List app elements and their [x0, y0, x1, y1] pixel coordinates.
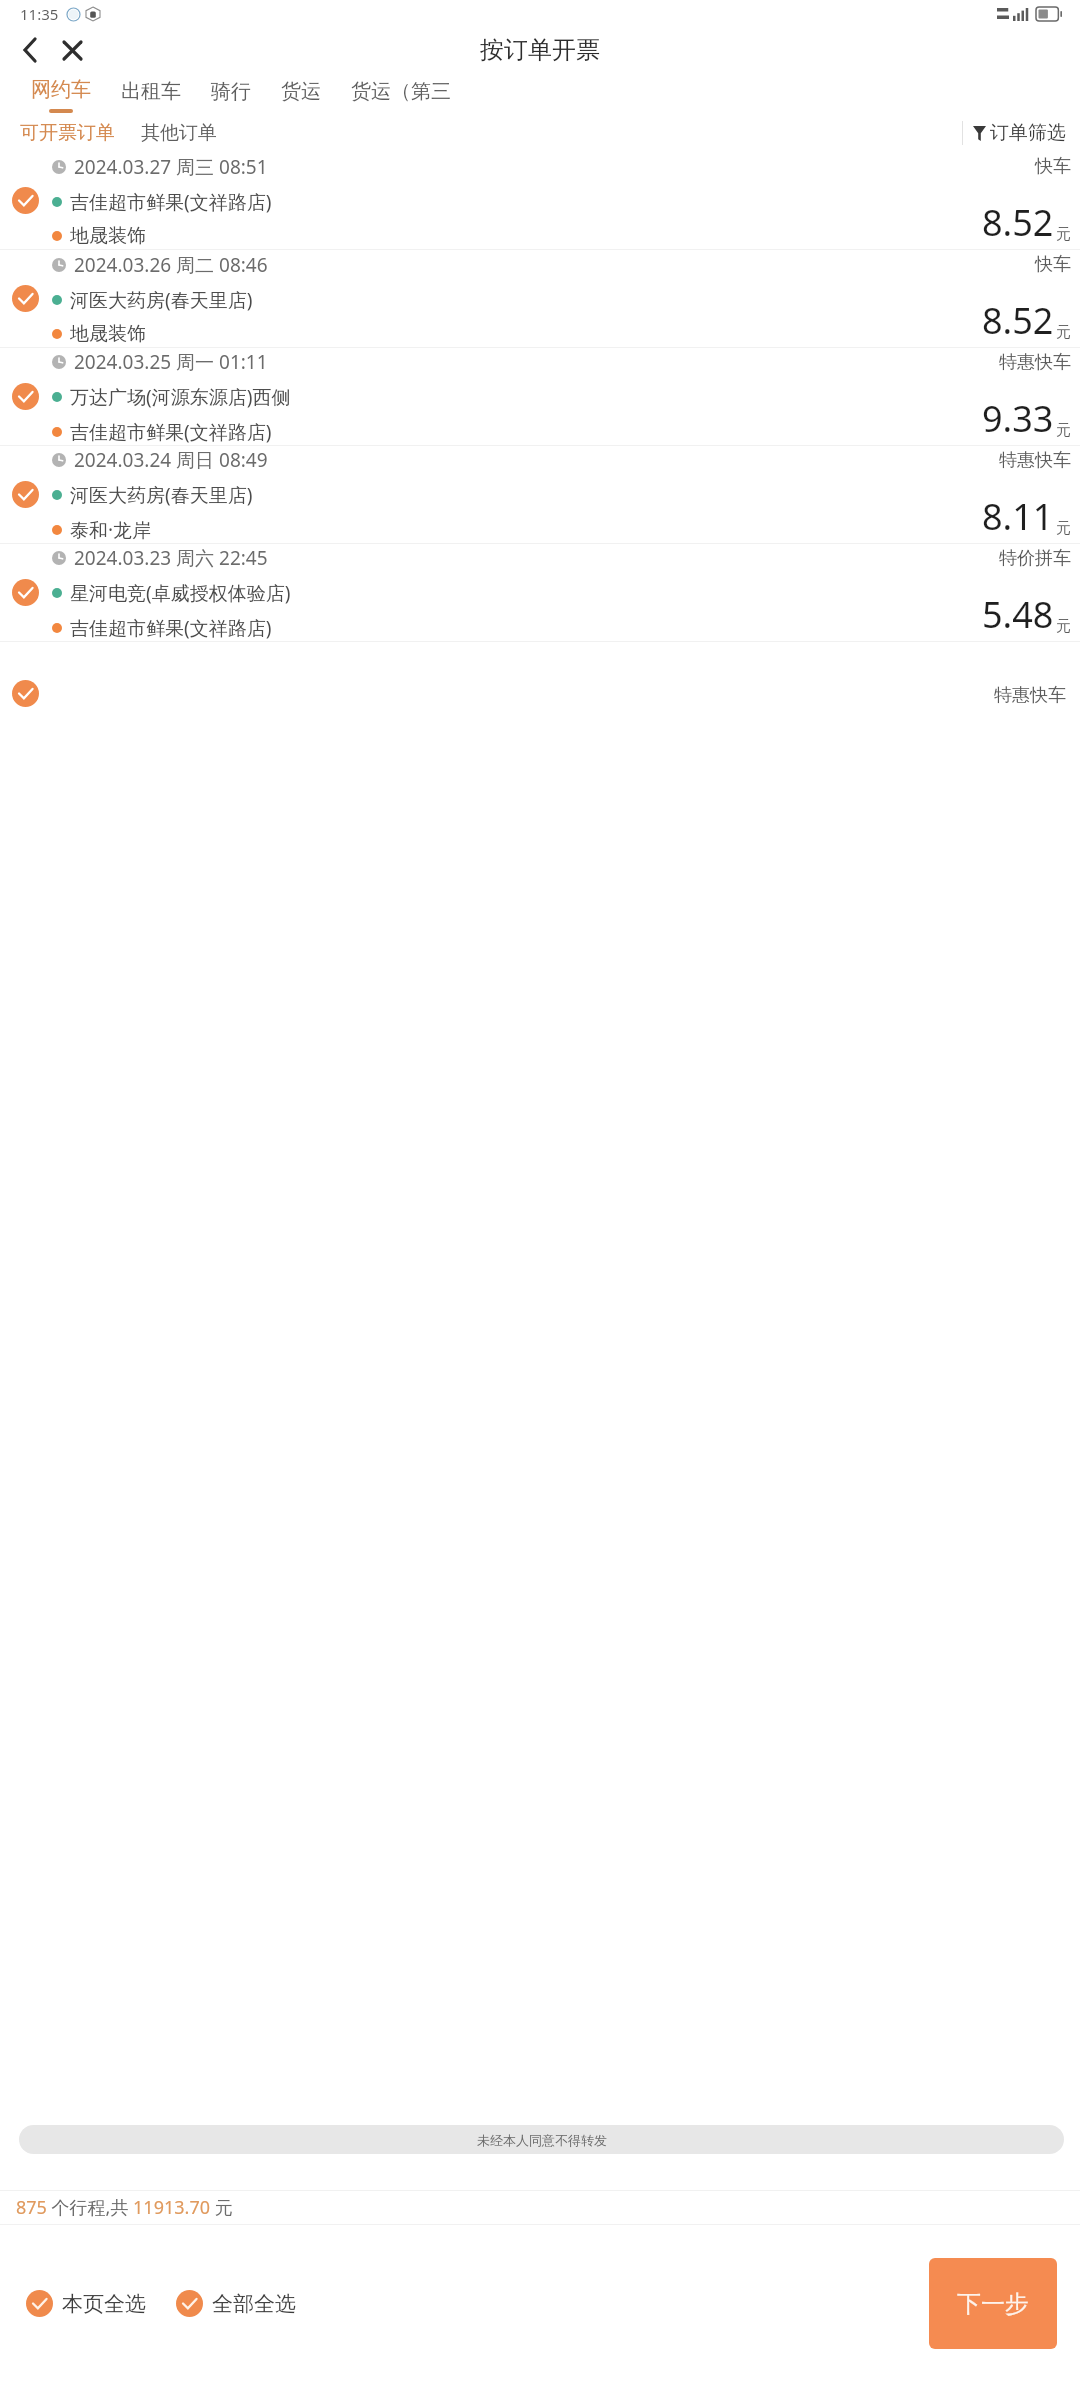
- staticText: 吉佳超市鲜果(文祥路店): [70, 419, 272, 445]
- button[interactable]: 可开票订单: [16, 114, 119, 152]
- staticText: 万达广场(河源东源店)西侧: [70, 384, 291, 410]
- button[interactable]: 骑行: [196, 71, 266, 114]
- staticText: 吉佳超市鲜果(文祥路店): [70, 189, 272, 215]
- staticText: 特惠快车: [994, 684, 1066, 707]
- button[interactable]: 本页全选: [22, 2286, 150, 2321]
- button[interactable]: Selected: [12, 481, 39, 508]
- staticText: 8.11: [982, 492, 1054, 541]
- button[interactable]: 出租车: [106, 71, 196, 114]
- button[interactable]: Selected: [12, 187, 39, 214]
- staticText: 网约车: [31, 77, 91, 102]
- button[interactable]: 其他订单: [137, 114, 221, 152]
- button[interactable]: Selected: [0, 348, 1080, 445]
- button[interactable]: Selected: [0, 152, 1080, 249]
- staticText: 河医大药房(春天里店): [70, 287, 253, 313]
- staticText: 未经本人同意不得转发: [477, 2132, 607, 2148]
- staticText: 8.52: [982, 296, 1054, 345]
- button[interactable]: 货运（第三: [336, 71, 466, 114]
- button[interactable]: Back: [10, 30, 50, 70]
- staticText: 2024.03.24 周日 08:49: [74, 447, 268, 473]
- button[interactable]: 网约车: [16, 71, 106, 114]
- button[interactable]: Selected: [0, 544, 1080, 641]
- staticText: 泰和·龙岸: [70, 517, 152, 543]
- staticText: 元: [1056, 421, 1071, 440]
- staticText: 8.52: [982, 198, 1054, 247]
- staticText: 货运（第三: [351, 79, 451, 104]
- staticText: 快车: [1035, 253, 1071, 276]
- staticText: 订单筛选: [990, 121, 1066, 145]
- staticText: 特惠快车: [999, 351, 1071, 374]
- button[interactable]: 特惠快车: [0, 642, 1080, 739]
- staticText: 2024.03.26 周二 08:46: [74, 252, 268, 278]
- staticText: 11:35: [20, 4, 59, 24]
- staticText: 2024.03.25 周一 01:11: [74, 349, 268, 375]
- staticText: 本页全选: [62, 2291, 146, 2317]
- staticText: 5.48: [982, 590, 1054, 639]
- staticText: 2024.03.23 周六 22:45: [74, 545, 268, 571]
- button[interactable]: Selected: [12, 579, 39, 606]
- button[interactable]: Selected: [12, 285, 39, 312]
- button[interactable]: Close: [52, 30, 92, 70]
- staticText: 快车: [1035, 155, 1071, 178]
- button[interactable]: 货运: [266, 71, 336, 114]
- staticText: 下一步: [957, 2289, 1029, 2319]
- staticText: 9.33: [982, 394, 1054, 443]
- button[interactable]: Selected: [0, 446, 1080, 543]
- button[interactable]: Selected: [0, 250, 1080, 347]
- staticText: 特价拼车: [999, 547, 1071, 570]
- staticText: 地晟装饰: [70, 224, 146, 248]
- staticText: 河医大药房(春天里店): [70, 482, 253, 508]
- staticText: 特惠快车: [999, 449, 1071, 472]
- staticText: 出租车: [121, 79, 181, 104]
- staticText: 元: [1056, 519, 1071, 538]
- staticText: 按订单开票: [480, 35, 600, 65]
- staticText: 骑行: [211, 79, 251, 104]
- button[interactable]: 下一步: [929, 2258, 1057, 2349]
- button[interactable]: Selected: [12, 383, 39, 410]
- staticText: 元: [1056, 323, 1071, 342]
- staticText: 吉佳超市鲜果(文祥路店): [70, 615, 272, 641]
- staticText: 可开票订单: [20, 121, 115, 145]
- staticText: 其他订单: [141, 121, 217, 145]
- staticText: 货运: [281, 79, 321, 104]
- staticText: 星河电竞(卓威授权体验店): [70, 580, 291, 606]
- staticText: 地晟装饰: [70, 322, 146, 346]
- staticText: 元: [1056, 617, 1071, 636]
- staticText: 全部全选: [212, 2291, 296, 2317]
- staticText: 875 个行程,共 11913.70 元: [16, 2195, 233, 2220]
- button[interactable]: 全部全选: [172, 2286, 300, 2321]
- button[interactable]: 订单筛选: [952, 114, 1080, 152]
- staticText: 2024.03.27 周三 08:51: [74, 154, 268, 180]
- staticText: 元: [1056, 225, 1071, 244]
